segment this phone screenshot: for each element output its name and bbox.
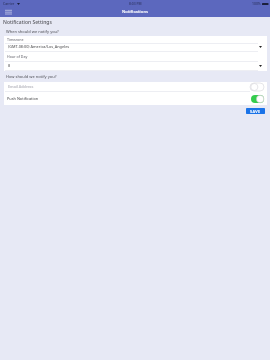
button[interactable]: Switch off [250,83,264,91]
staticText: 8:03 PM [129,1,142,5]
staticText: How should we notify you? [6,74,57,79]
button[interactable]: SAVE [246,108,265,114]
staticText: When should we notify you? [6,29,59,34]
staticText: 100% [252,1,261,6]
staticText: Carrier [3,1,15,6]
staticText: Notification Settings [3,19,52,26]
staticText: Notifications [122,9,149,15]
staticText: 8 [8,63,11,68]
staticText: Timezone [7,37,24,42]
button[interactable]: Open navigation menu [3,8,14,16]
staticText: Email Address [8,84,34,89]
button[interactable]: Switch on [251,95,264,103]
staticText: SAVE [250,109,261,114]
staticText: (GMT-08:00) America/Los_Angeles [8,44,70,49]
button[interactable]: Expand [257,63,263,69]
staticText: Push Notification [7,96,39,101]
staticText: Hour of Day [7,54,28,59]
button[interactable]: Expand [257,44,263,50]
